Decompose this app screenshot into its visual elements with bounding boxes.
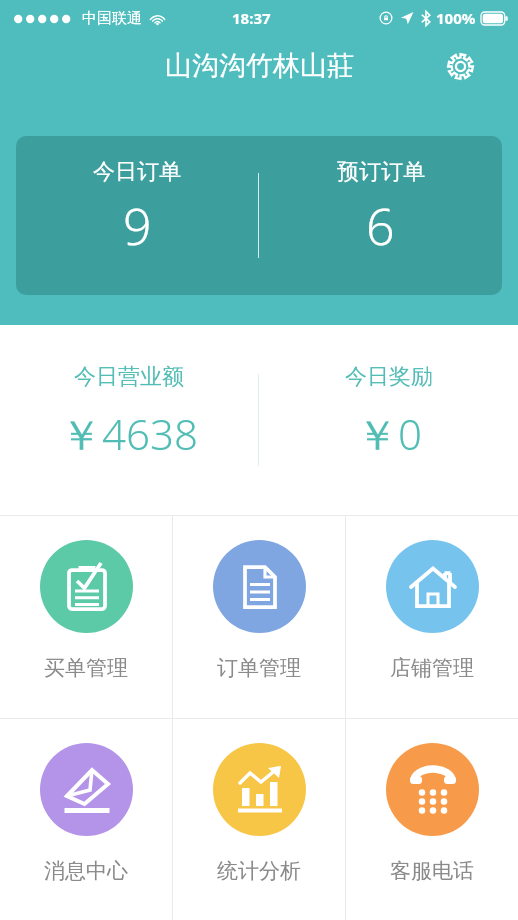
staticText: 客服电话 [390,858,474,884]
staticText: 预订订单 [337,158,425,186]
staticText: 100% [436,8,476,28]
staticText: 今日奖励 [345,363,433,391]
button[interactable]: 今日营业额 [0,325,258,515]
staticText: ￥0 [356,405,422,462]
button[interactable]: 消息中心 [0,719,172,920]
button[interactable]: 店铺管理 [346,516,518,718]
staticText: 订单管理 [217,655,301,681]
staticText: 山沟沟竹林山莊 [165,49,354,83]
button[interactable]: 买单管理 [0,516,172,718]
staticText: 买单管理 [44,655,128,681]
button[interactable]: 预订订单 [259,136,502,295]
button[interactable]: 今日奖励 [259,325,518,515]
staticText: ￥4638 [60,405,198,462]
staticText: 统计分析 [217,858,301,884]
staticText: 店铺管理 [390,655,474,681]
staticText: 中国联通 [82,9,142,28]
button[interactable]: Settings [437,43,483,89]
button[interactable]: 今日订单 [16,136,258,295]
staticText: 9 [123,192,152,260]
staticText: 今日营业额 [74,363,184,391]
button[interactable]: 订单管理 [173,516,345,718]
button[interactable]: 客服电话 [346,719,518,920]
button[interactable]: 统计分析 [173,719,345,920]
staticText: 今日订单 [93,158,181,186]
staticText: 6 [366,192,395,260]
staticText: 消息中心 [44,858,128,884]
staticText: 18:37 [232,8,271,28]
